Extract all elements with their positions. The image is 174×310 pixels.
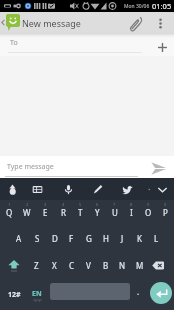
staticText: S [35, 233, 40, 244]
button[interactable]: Stickers [28, 180, 46, 198]
button[interactable]: Twitter [118, 180, 136, 198]
staticText: A [16, 233, 22, 244]
button[interactable]: H [97, 225, 114, 251]
button[interactable]: G [80, 225, 97, 251]
staticText: EN [32, 289, 42, 299]
button[interactable]: Shift [0, 251, 27, 279]
button[interactable]: More options [152, 15, 168, 31]
staticText: U [112, 207, 118, 218]
button[interactable]: 4 [54, 200, 72, 225]
staticText: Mon 30/06 [124, 3, 150, 10]
button[interactable]: S [28, 225, 46, 251]
button[interactable]: 3 [36, 200, 54, 225]
staticText: W [23, 207, 31, 218]
staticText: V [86, 260, 91, 271]
button[interactable]: F [63, 225, 80, 251]
staticText: Y [95, 207, 100, 218]
staticText: F [69, 233, 74, 244]
button[interactable]: Hide keyboard [153, 180, 171, 198]
button[interactable]: 8 [123, 200, 140, 225]
button[interactable]: L [148, 225, 165, 251]
staticText: K [137, 233, 142, 244]
staticText: 12# [8, 290, 21, 300]
staticText: L [154, 233, 159, 244]
staticText: H [103, 233, 109, 244]
button[interactable]: Handwriting [88, 180, 106, 198]
button[interactable]: Backspace [148, 251, 174, 279]
button[interactable]: Voice input [59, 180, 77, 198]
staticText: 1 [8, 202, 11, 207]
staticText: C [69, 260, 75, 271]
button[interactable]: 5 [72, 200, 89, 225]
button[interactable]: 1 [0, 200, 18, 225]
button[interactable]: Add recipient [151, 36, 173, 58]
staticText: T [78, 207, 83, 218]
button[interactable]: Text cursor [3, 180, 21, 198]
staticText: 2 [26, 202, 29, 207]
button[interactable]: 6 [89, 200, 106, 225]
staticText: 8 [130, 202, 133, 207]
staticText: E [43, 207, 48, 218]
button[interactable]: Send [148, 159, 169, 177]
button[interactable]: D [46, 225, 63, 251]
button[interactable]: 12# [2, 284, 26, 306]
staticText: Type message [7, 162, 54, 172]
button[interactable]: Change language [26, 284, 48, 306]
button[interactable]: Attach [125, 13, 145, 33]
staticText: X [52, 260, 57, 271]
button[interactable]: A [10, 225, 28, 251]
staticText: G [86, 233, 92, 244]
button[interactable]: 7 [106, 200, 123, 225]
button[interactable]: 2 [18, 200, 36, 225]
button[interactable]: C [63, 251, 80, 279]
button[interactable]: M [131, 251, 148, 279]
staticText: . [137, 286, 140, 297]
staticText: D [52, 233, 58, 244]
staticText: Z [34, 260, 39, 271]
staticText: B [103, 260, 109, 271]
staticText: Q [6, 207, 13, 218]
button[interactable]: X [45, 251, 63, 279]
staticText: 9 [147, 202, 150, 207]
button[interactable]: Z [27, 251, 45, 279]
button[interactable]: Enter [150, 282, 172, 304]
staticText: 7 [113, 202, 116, 207]
button[interactable]: Navigate up [0, 14, 20, 31]
staticText: 6 [96, 202, 99, 207]
staticText: New message [22, 17, 81, 29]
button[interactable]: 0 [157, 200, 174, 225]
staticText: 4 [62, 202, 65, 207]
staticText: M [136, 260, 144, 271]
button[interactable]: 9 [140, 200, 157, 225]
button[interactable]: N [114, 251, 131, 279]
staticText: 3 [44, 202, 47, 207]
button[interactable]: J [114, 225, 131, 251]
staticText: J [121, 233, 124, 244]
staticText: N [119, 260, 126, 271]
staticText: R [61, 207, 66, 218]
staticText: 5 [79, 202, 82, 207]
staticText: O [145, 207, 152, 218]
staticText: 01:05 [152, 1, 172, 11]
button[interactable]: K [131, 225, 148, 251]
staticText: P [163, 207, 168, 218]
button[interactable]: B [97, 251, 114, 279]
button[interactable]: V [80, 251, 97, 279]
staticText: 0 [164, 202, 167, 207]
staticText: I [130, 207, 133, 218]
staticText: To [10, 38, 18, 48]
button[interactable]: . [132, 281, 145, 301]
